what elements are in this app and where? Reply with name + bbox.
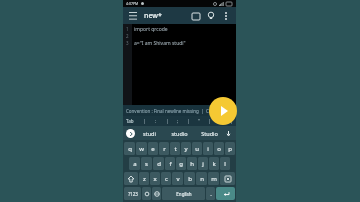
button[interactable]: q (124, 142, 135, 155)
button[interactable]: s (141, 157, 152, 170)
staticText: x (153, 175, 157, 183)
button[interactable]: h (187, 157, 197, 170)
button[interactable]: Backspace (220, 172, 235, 185)
staticText: 3 (126, 40, 129, 47)
button[interactable]: Open folder (190, 10, 202, 22)
button[interactable]: z (139, 172, 149, 185)
button[interactable]: English (162, 187, 205, 200)
staticText: k (212, 160, 216, 168)
button[interactable]: n (196, 172, 207, 185)
staticText: Studio (201, 130, 218, 137)
button[interactable]: i (203, 142, 213, 155)
staticText: c (165, 175, 168, 183)
staticText: a (133, 160, 137, 168)
staticText: q (128, 145, 132, 153)
button[interactable]: c (161, 172, 171, 185)
button[interactable]: Play (209, 97, 237, 125)
button[interactable]: b (184, 172, 195, 185)
button[interactable]: m (208, 172, 219, 185)
staticText: g (179, 160, 183, 168)
button[interactable]: ?123 (124, 187, 141, 200)
button[interactable]: Menu (127, 10, 139, 22)
staticText: o (217, 145, 221, 153)
staticText: | (230, 118, 233, 124)
button[interactable]: x (150, 172, 160, 185)
staticText: ; (177, 118, 179, 124)
staticText: j (202, 160, 204, 168)
staticText: r (163, 145, 166, 153)
button[interactable]: Emoji (142, 187, 151, 200)
staticText: n (200, 175, 204, 183)
staticText: " (198, 118, 200, 124)
button[interactable]: y (181, 142, 191, 155)
button[interactable]: r (159, 142, 169, 155)
staticText: studio (171, 130, 188, 137)
button[interactable]: o (214, 142, 224, 155)
staticText: a="I am Shivam studi" (134, 40, 186, 47)
staticText: ?123 (128, 191, 138, 197)
staticText: | (143, 118, 146, 124)
button[interactable]: v (172, 172, 183, 185)
staticText: Tab (126, 118, 134, 124)
button[interactable]: Voice input (224, 129, 233, 138)
button[interactable]: Studio (194, 126, 224, 140)
staticText: | (208, 118, 211, 124)
staticText: English (176, 191, 192, 197)
staticText: s (145, 160, 148, 168)
staticText: import qrcode (134, 26, 168, 33)
staticText: m (211, 175, 217, 183)
button[interactable]: u (192, 142, 202, 155)
staticText: l (224, 160, 226, 168)
staticText: : (155, 118, 157, 124)
button[interactable]: a (129, 157, 140, 170)
button[interactable]: studio (164, 126, 194, 140)
staticText: i (207, 145, 209, 153)
staticText: z (143, 175, 146, 183)
button[interactable]: . (206, 187, 215, 200)
staticText: 1 (126, 26, 129, 33)
staticText: e (151, 145, 155, 153)
button[interactable]: f (165, 157, 175, 170)
button[interactable]: Change language (152, 187, 161, 200)
staticText: new* (144, 11, 162, 21)
staticText: 2 (126, 33, 129, 40)
staticText: y (184, 145, 188, 153)
button[interactable]: Shift (124, 172, 138, 185)
staticText: t (174, 145, 177, 153)
button[interactable]: t (170, 142, 180, 155)
staticText: Convention : Final newline missing | Con… (126, 108, 220, 114)
staticText: h (190, 160, 194, 168)
staticText: | (166, 118, 169, 124)
button[interactable]: p (225, 142, 235, 155)
staticText: b (188, 175, 192, 183)
button[interactable]: More options (220, 10, 232, 22)
button[interactable]: Hints (205, 10, 217, 22)
button[interactable]: j (198, 157, 208, 170)
staticText: u (195, 145, 199, 153)
staticText: | (187, 118, 190, 124)
button[interactable]: studi (135, 126, 164, 140)
staticText: d (157, 160, 161, 168)
staticText: f (169, 160, 172, 168)
button[interactable]: Enter (216, 187, 235, 200)
button[interactable]: e (148, 142, 158, 155)
staticText: v (176, 175, 180, 183)
button[interactable]: d (153, 157, 164, 170)
button[interactable]: g (176, 157, 186, 170)
staticText: . (210, 190, 212, 198)
button[interactable]: k (209, 157, 219, 170)
staticText: studi (143, 130, 156, 137)
button[interactable]: l (220, 157, 230, 170)
staticText: p (228, 145, 232, 153)
staticText: w (139, 145, 144, 153)
staticText: 4:07PM (126, 1, 139, 6)
button[interactable]: Expand suggestions (126, 129, 135, 138)
button[interactable]: w (136, 142, 147, 155)
